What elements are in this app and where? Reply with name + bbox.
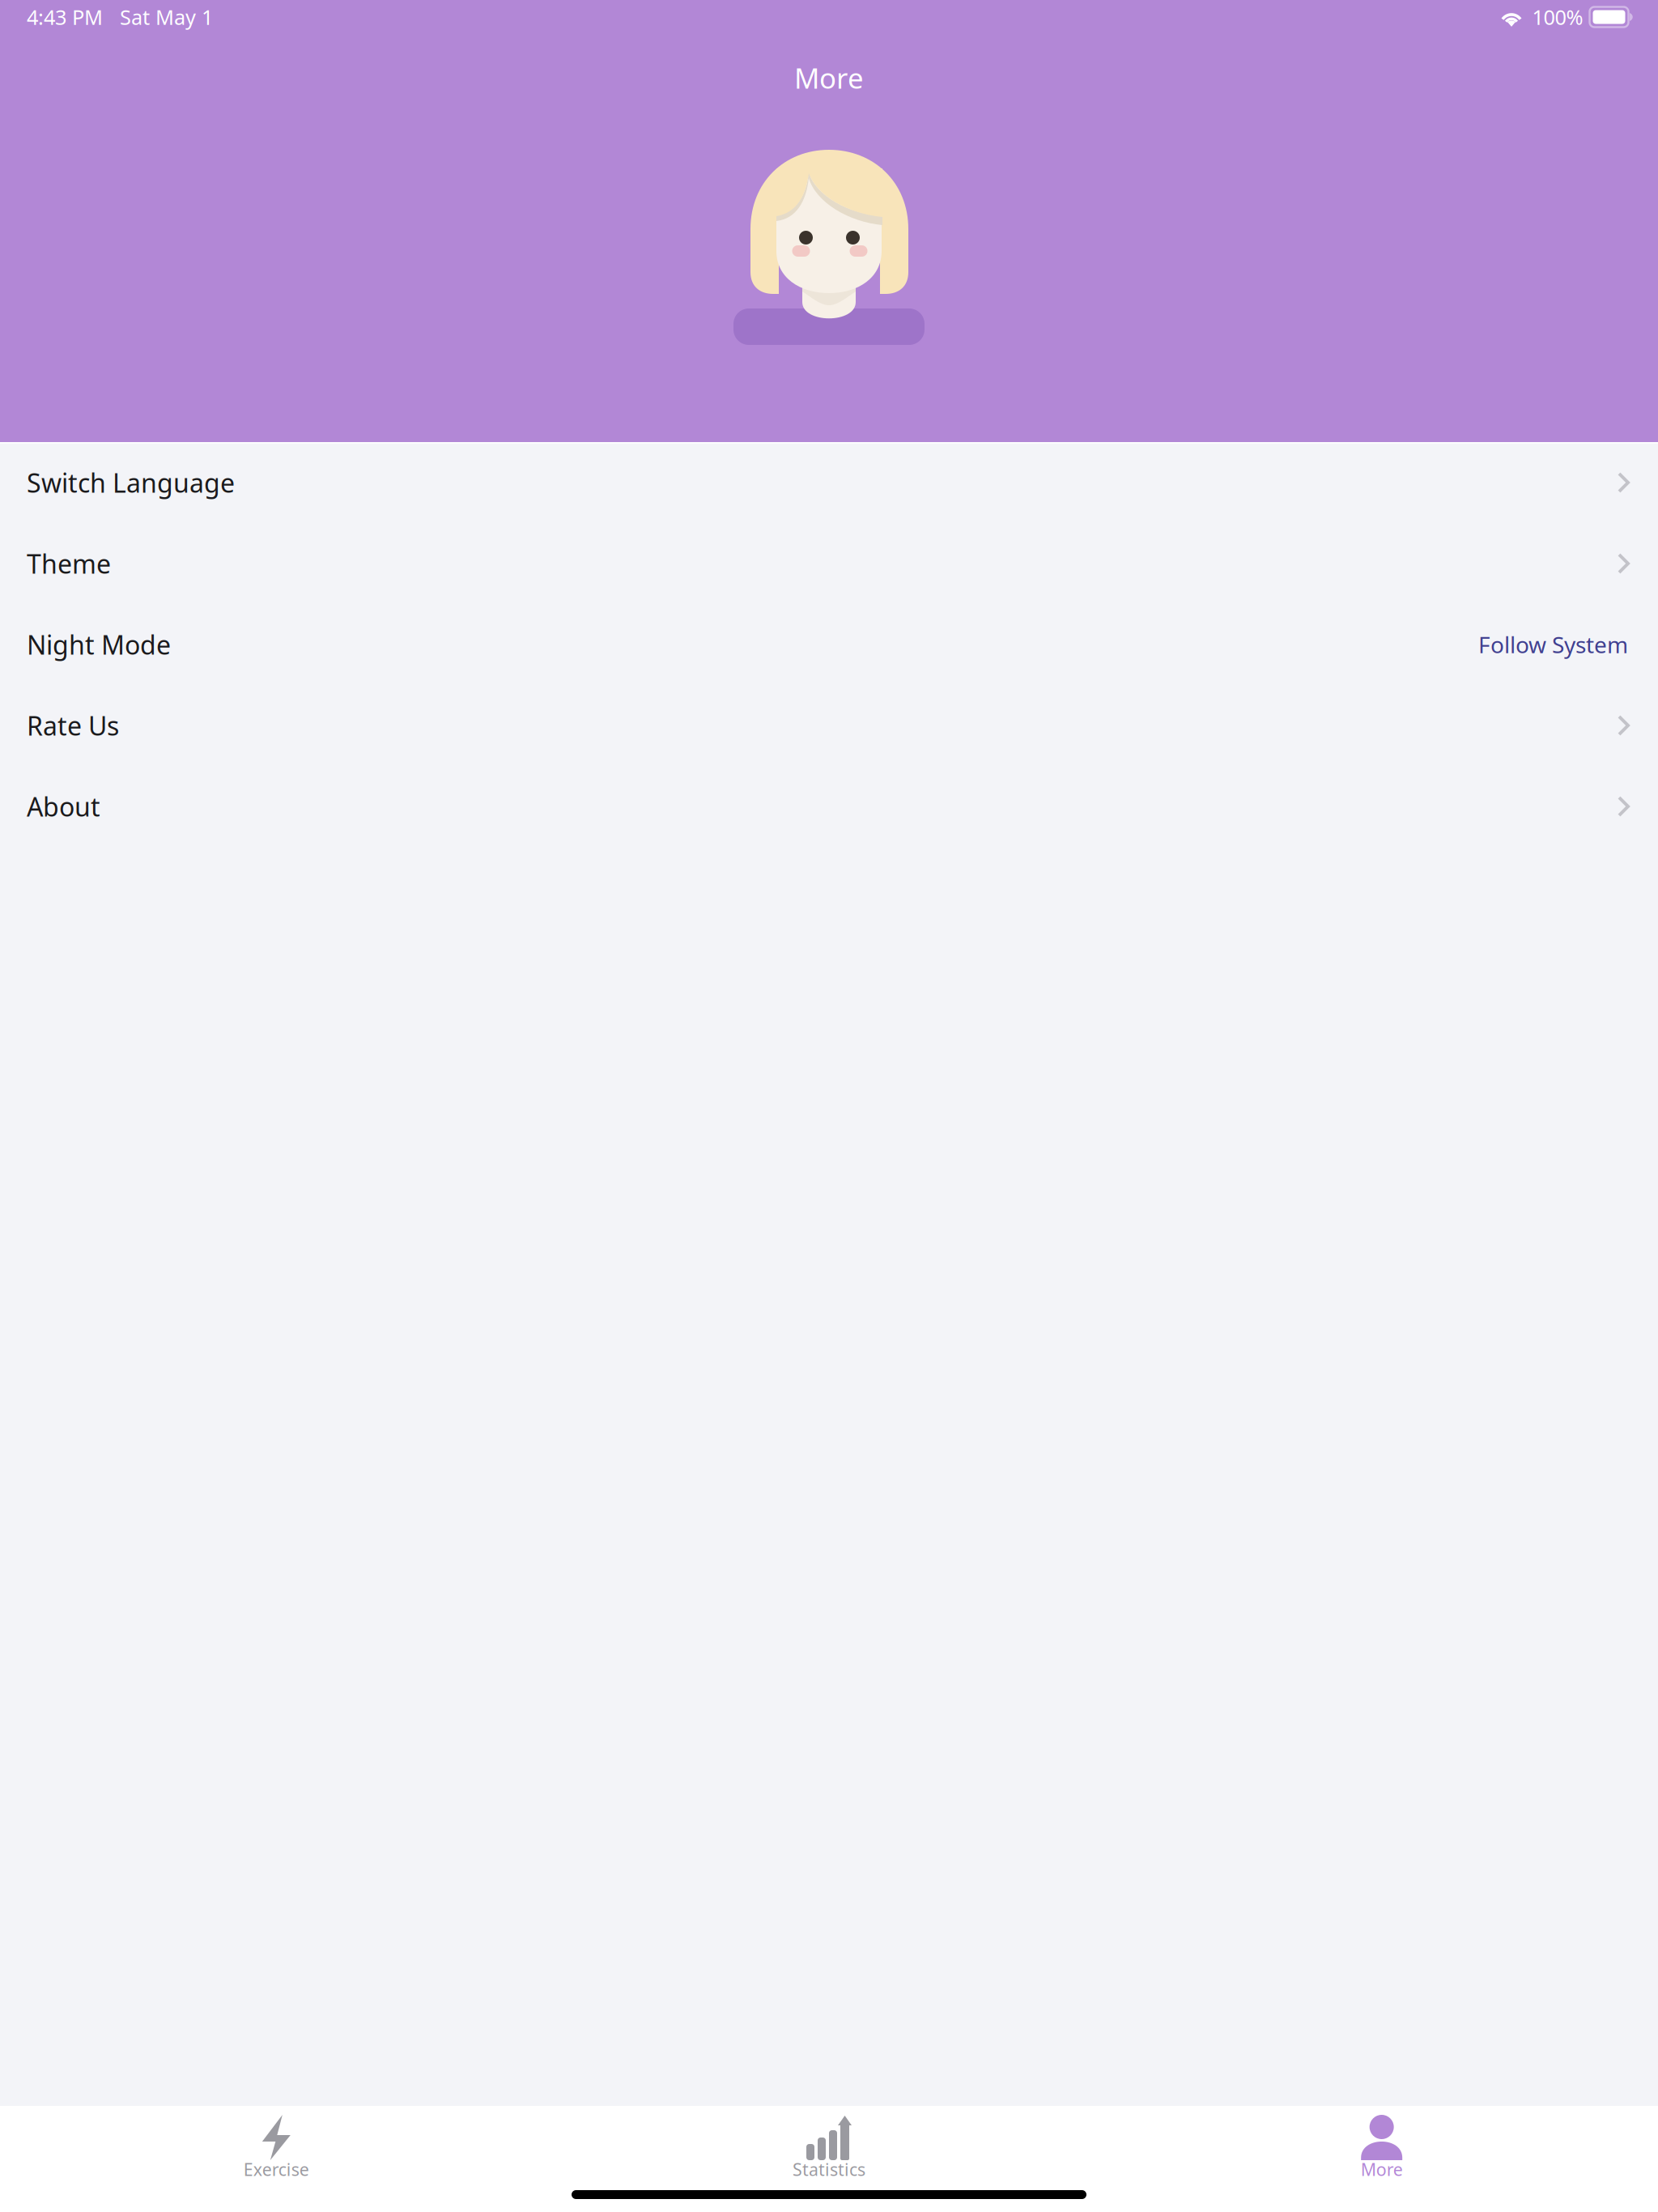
staticText: 100% <box>1532 3 1583 31</box>
button[interactable]: Theme <box>0 523 1658 604</box>
button[interactable]: Exercise <box>0 2106 553 2190</box>
staticText: 4:43 PM Sat May 1 <box>27 3 213 31</box>
staticText: Follow System <box>1478 629 1628 660</box>
button[interactable]: Rate Us <box>0 685 1658 766</box>
staticText: Switch Language <box>27 465 235 500</box>
staticText: Night Mode <box>27 627 171 662</box>
staticText: More <box>1361 2158 1403 2181</box>
staticText: More <box>794 59 864 96</box>
staticText: Rate Us <box>27 708 119 743</box>
staticText: Exercise <box>244 2158 309 2181</box>
staticText: About <box>27 789 100 824</box>
staticText: Statistics <box>793 2158 865 2181</box>
button[interactable]: Statistics <box>553 2106 1105 2190</box>
button[interactable]: Switch Language <box>0 442 1658 523</box>
button[interactable]: Night Mode <box>0 604 1658 685</box>
button[interactable]: More <box>1105 2106 1658 2190</box>
button[interactable]: About <box>0 766 1658 847</box>
staticText: Theme <box>27 546 111 581</box>
